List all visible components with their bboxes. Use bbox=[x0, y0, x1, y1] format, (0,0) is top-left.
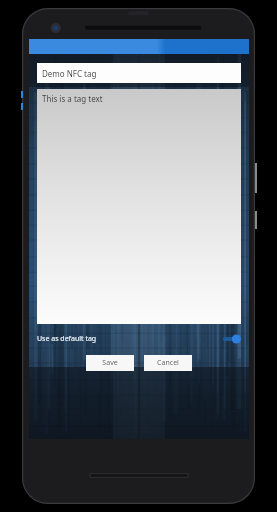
staticText: This is a tag text bbox=[42, 93, 103, 104]
button[interactable]: Use as default tag toggle bbox=[223, 334, 241, 344]
button[interactable]: Demo NFC tag bbox=[37, 63, 241, 83]
staticText: Cancel bbox=[157, 358, 179, 368]
staticText: Demo NFC tag bbox=[42, 68, 97, 79]
button[interactable]: Save bbox=[86, 355, 134, 371]
button[interactable]: Use as default tag bbox=[37, 330, 241, 348]
staticText: Use as default tag bbox=[37, 334, 97, 344]
button[interactable]: Cancel bbox=[144, 355, 192, 371]
button[interactable]: This is a tag text bbox=[37, 89, 241, 324]
staticText: Save bbox=[102, 358, 118, 368]
